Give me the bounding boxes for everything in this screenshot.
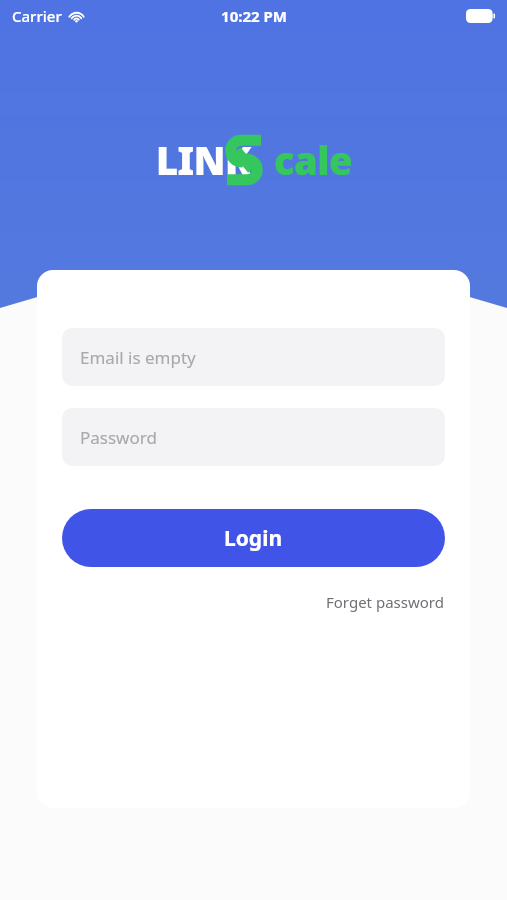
staticText: LINK <box>156 134 251 186</box>
button[interactable]: Email is empty <box>62 328 445 386</box>
button[interactable]: Password <box>62 408 445 466</box>
staticText: Forget password <box>326 592 444 612</box>
other: Wi-Fi signal <box>68 8 85 25</box>
staticText: 10:22 PM <box>221 6 287 26</box>
staticText: Login <box>224 524 283 553</box>
staticText: Password <box>80 426 157 449</box>
other: Battery full <box>466 9 495 23</box>
button[interactable]: Forget password <box>323 587 447 617</box>
button[interactable]: Login <box>62 509 445 567</box>
staticText: Email is empty <box>80 346 196 369</box>
staticText: Carrier <box>12 6 62 26</box>
staticText: cale <box>274 134 352 186</box>
